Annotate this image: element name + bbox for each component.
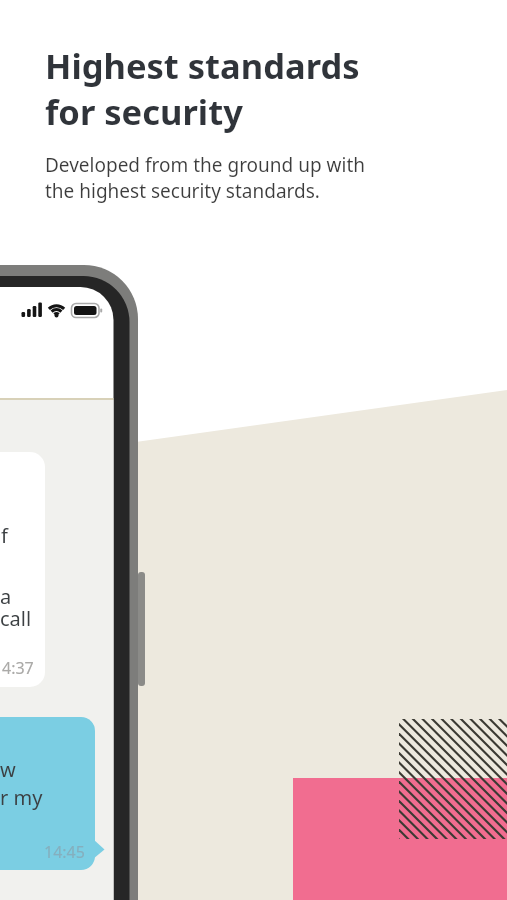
staticText: Highest standards for security	[45, 42, 360, 135]
staticText: r my	[0, 784, 43, 811]
staticText: call	[0, 605, 32, 632]
staticText: 4:37	[2, 657, 34, 679]
staticText: a	[0, 583, 12, 610]
staticText: Developed from the ground up with the hi…	[45, 152, 366, 203]
staticText: f	[1, 522, 8, 549]
staticText: 14:45	[44, 841, 85, 863]
staticText: w	[0, 756, 16, 783]
